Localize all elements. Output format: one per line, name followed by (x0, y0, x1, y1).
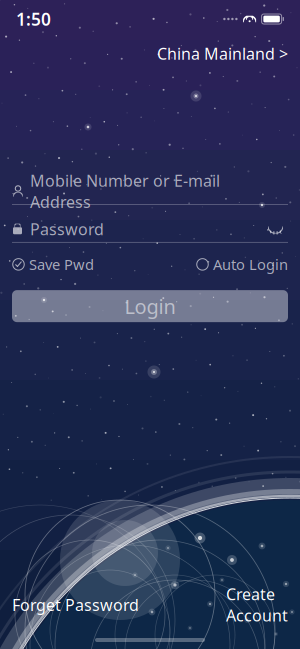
staticText: Forget Password (12, 594, 139, 615)
staticText: > (279, 43, 288, 64)
button[interactable]: Forget Password (0, 586, 151, 623)
staticText: Login (124, 293, 175, 319)
staticText: Save Pwd (29, 255, 94, 274)
button[interactable]: China Mainland (145, 37, 300, 70)
staticText: 1:50 (16, 7, 51, 30)
staticText: Password (30, 218, 104, 239)
staticText: Create Account (226, 583, 288, 626)
button[interactable]: Show password (263, 219, 288, 239)
button[interactable]: Create Account (214, 575, 300, 634)
staticText: Auto Login (213, 255, 288, 274)
button[interactable]: Auto Login (196, 251, 288, 278)
staticText: China Mainland (157, 43, 275, 64)
button[interactable]: Login (12, 290, 288, 322)
button[interactable]: Save Pwd (12, 251, 94, 278)
staticText: Mobile Number or E-mail Address (30, 170, 220, 212)
